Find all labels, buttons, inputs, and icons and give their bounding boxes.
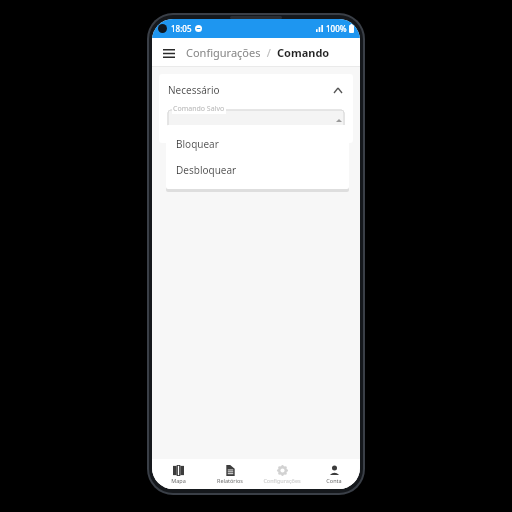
staticText: Desbloquear xyxy=(176,163,237,177)
staticText: Comando Salvo xyxy=(173,104,225,114)
staticText: Bloquear xyxy=(176,137,219,151)
staticText: Configurações xyxy=(263,477,301,484)
staticText: Mapa xyxy=(171,477,186,484)
button[interactable]: Comando Salvo xyxy=(168,106,344,130)
staticText: Relatórios xyxy=(217,477,243,484)
button[interactable]: Bloquear xyxy=(166,131,349,157)
staticText: Configurações xyxy=(186,45,261,60)
staticText: 100% xyxy=(326,23,347,34)
button[interactable]: Necessário xyxy=(168,83,344,97)
button[interactable]: Menu xyxy=(160,44,178,62)
staticText: Conta xyxy=(326,477,342,484)
staticText: Necessário xyxy=(168,83,220,97)
button[interactable]: Configurações xyxy=(256,459,308,489)
button[interactable]: Conta xyxy=(308,459,360,489)
button[interactable]: Desbloquear xyxy=(166,157,349,183)
staticText: / xyxy=(261,45,277,60)
button[interactable]: Relatórios xyxy=(204,459,256,489)
staticText: Comando xyxy=(277,45,330,60)
button[interactable]: Mapa xyxy=(152,459,204,489)
staticText: 18:05 xyxy=(171,23,192,34)
